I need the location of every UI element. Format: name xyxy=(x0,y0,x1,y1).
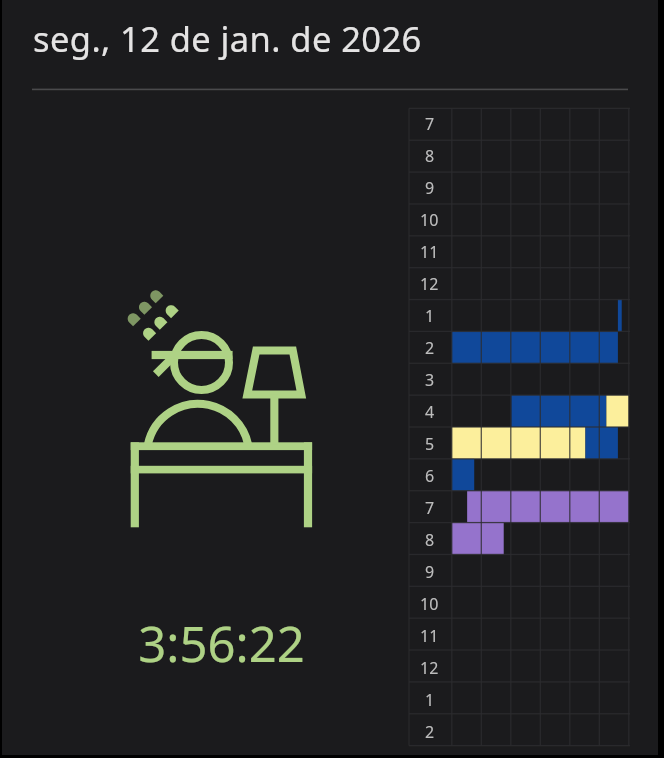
staticText: 9 xyxy=(425,177,435,199)
button[interactable]: 3:56:22 xyxy=(119,610,324,677)
staticText: 7 xyxy=(425,497,435,519)
staticText: 10 xyxy=(420,593,439,615)
staticText: 1 xyxy=(425,305,435,327)
staticText: 4 xyxy=(425,401,435,423)
staticText: 8 xyxy=(425,529,435,551)
staticText: seg., 12 de jan. de 2026 xyxy=(33,15,422,62)
staticText: 12 xyxy=(420,273,439,295)
staticText: 8 xyxy=(425,145,435,167)
staticText: 10 xyxy=(420,209,439,231)
staticText: 2 xyxy=(425,721,435,743)
staticText: 1 xyxy=(425,689,435,711)
staticText: 6 xyxy=(425,465,435,487)
staticText: 3 xyxy=(425,369,435,391)
staticText: 11 xyxy=(420,241,439,263)
staticText: 11 xyxy=(420,625,439,647)
button[interactable]: Sleep tracking xyxy=(122,280,312,540)
staticText: 12 xyxy=(420,657,439,679)
staticText: 7 xyxy=(425,113,435,135)
staticText: 2 xyxy=(425,337,435,359)
staticText: 9 xyxy=(425,561,435,583)
button[interactable]: seg., 12 de jan. de 2026 xyxy=(2,0,658,90)
staticText: 5 xyxy=(425,433,435,455)
